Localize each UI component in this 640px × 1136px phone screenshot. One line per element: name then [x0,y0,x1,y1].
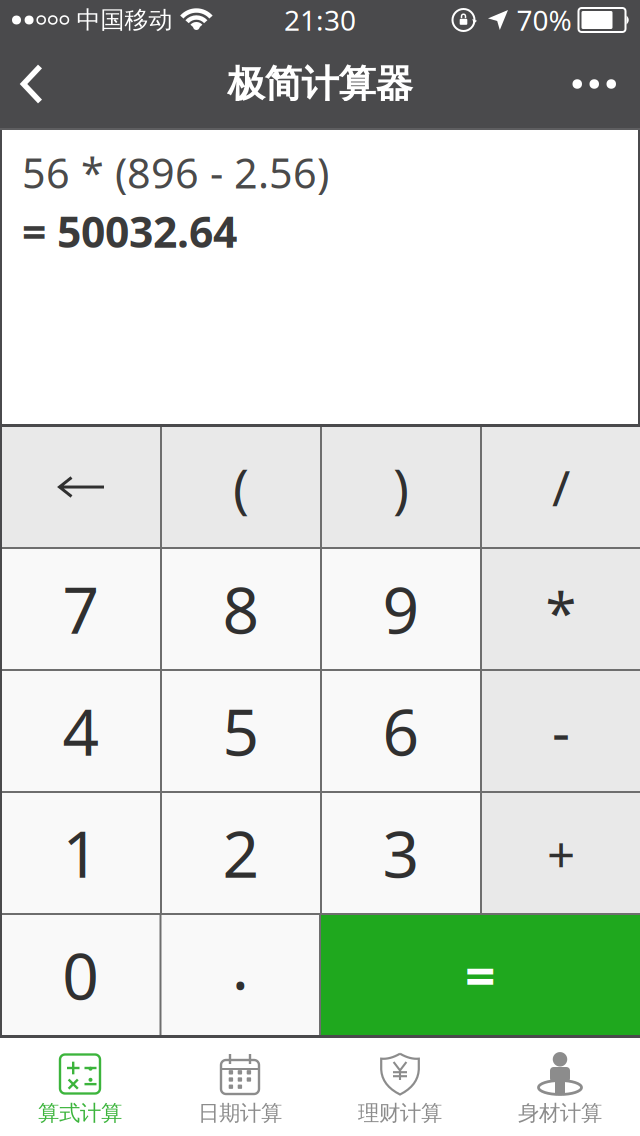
staticText: 8 [222,566,259,651]
button[interactable]: 5 [162,671,320,791]
staticText: 身材计算 [518,1100,602,1126]
staticText: 9 [382,566,419,651]
staticText: / [552,454,570,520]
staticText: 极简计算器 [227,61,412,107]
button[interactable]: 更多 [572,51,640,117]
staticText: ) [393,452,409,522]
staticText: 0 [62,932,99,1017]
button[interactable]: 返回 [0,46,42,121]
staticText: = 50032.64 [22,203,237,260]
staticText: + [547,820,575,886]
button[interactable]: 理财计算 [320,1038,480,1136]
staticText: 5 [222,688,259,773]
staticText: . [232,922,249,1007]
staticText: 中国移动 [76,5,172,35]
staticText: 日期计算 [198,1100,282,1126]
button[interactable]: 4 [2,671,160,791]
staticText: 理财计算 [358,1100,442,1126]
button[interactable]: 身材计算 [480,1038,640,1136]
button[interactable]: 日期计算 [160,1038,320,1136]
button[interactable]: ) [322,427,480,547]
button[interactable]: 8 [162,549,320,669]
button[interactable]: * [482,549,640,669]
staticText: * [545,575,576,649]
staticText: 7 [62,566,99,651]
button[interactable]: 删除 [2,427,160,547]
button[interactable]: 9 [322,549,480,669]
button[interactable]: 7 [2,549,160,669]
button[interactable]: ( [162,427,320,547]
staticText: 56 * (896 - 2.56) [22,145,329,200]
staticText: ( [233,452,249,522]
staticText: 70% [516,1,571,39]
button[interactable]: - [482,671,640,791]
staticText: = [465,940,496,1010]
staticText: 4 [62,688,99,773]
button[interactable]: 1 [2,793,160,913]
button[interactable]: 0 [2,915,159,1035]
button[interactable]: 算式计算 [0,1038,160,1136]
staticText: 算式计算 [38,1100,122,1126]
button[interactable]: = [321,915,640,1035]
button[interactable]: 3 [322,793,480,913]
staticText: 3 [382,810,419,895]
staticText: - [552,694,570,768]
button[interactable]: / [482,427,640,547]
button[interactable]: + [482,793,640,913]
button[interactable]: 2 [162,793,320,913]
button[interactable]: 6 [322,671,480,791]
staticText: 1 [62,810,99,895]
staticText: 6 [382,688,419,773]
button[interactable]: . [161,915,319,1035]
staticText: 21:30 [284,1,356,39]
staticText: 2 [222,810,259,895]
